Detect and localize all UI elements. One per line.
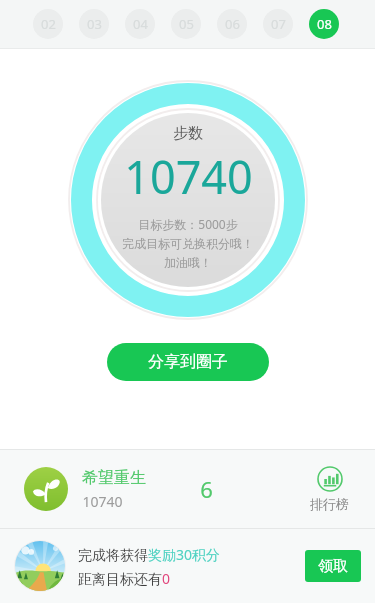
button[interactable]: 08 [309, 9, 339, 39]
staticText: 完成将获得奖励30积分 [78, 545, 221, 564]
button[interactable]: 04 [125, 9, 155, 39]
staticText: 06 [225, 15, 240, 33]
staticText: 08 [317, 15, 332, 33]
staticText: 10740 [124, 146, 253, 207]
staticText: 03 [87, 15, 102, 33]
button[interactable]: 06 [217, 9, 247, 39]
button[interactable]: 03 [79, 9, 109, 39]
button[interactable]: 02 [33, 9, 63, 39]
button[interactable]: 领取 [305, 550, 361, 582]
button[interactable]: 07 [263, 9, 293, 39]
staticText: 分享到圈子 [148, 352, 228, 372]
button[interactable]: 排行榜 [302, 462, 357, 516]
staticText: 距离目标还有0 [78, 569, 171, 588]
staticText: 完成目标可兑换积分哦！ [122, 236, 254, 251]
button[interactable]: 05 [171, 9, 201, 39]
staticText: 目标步数：5000步 [138, 216, 238, 232]
staticText: 加油哦！ [164, 255, 212, 270]
button[interactable]: 分享到圈子 [107, 343, 269, 381]
button[interactable]: 希望重生 [0, 450, 375, 528]
staticText: 04 [133, 15, 148, 33]
staticText: 希望重生 [82, 468, 146, 488]
staticText: 排行榜 [310, 496, 349, 512]
staticText: 07 [271, 15, 286, 33]
staticText: 10740 [82, 492, 123, 511]
staticText: 6 [200, 474, 213, 504]
staticText: 05 [179, 15, 194, 33]
staticText: 步数 [173, 124, 203, 143]
staticText: 02 [41, 15, 56, 33]
staticText: 领取 [318, 557, 348, 576]
